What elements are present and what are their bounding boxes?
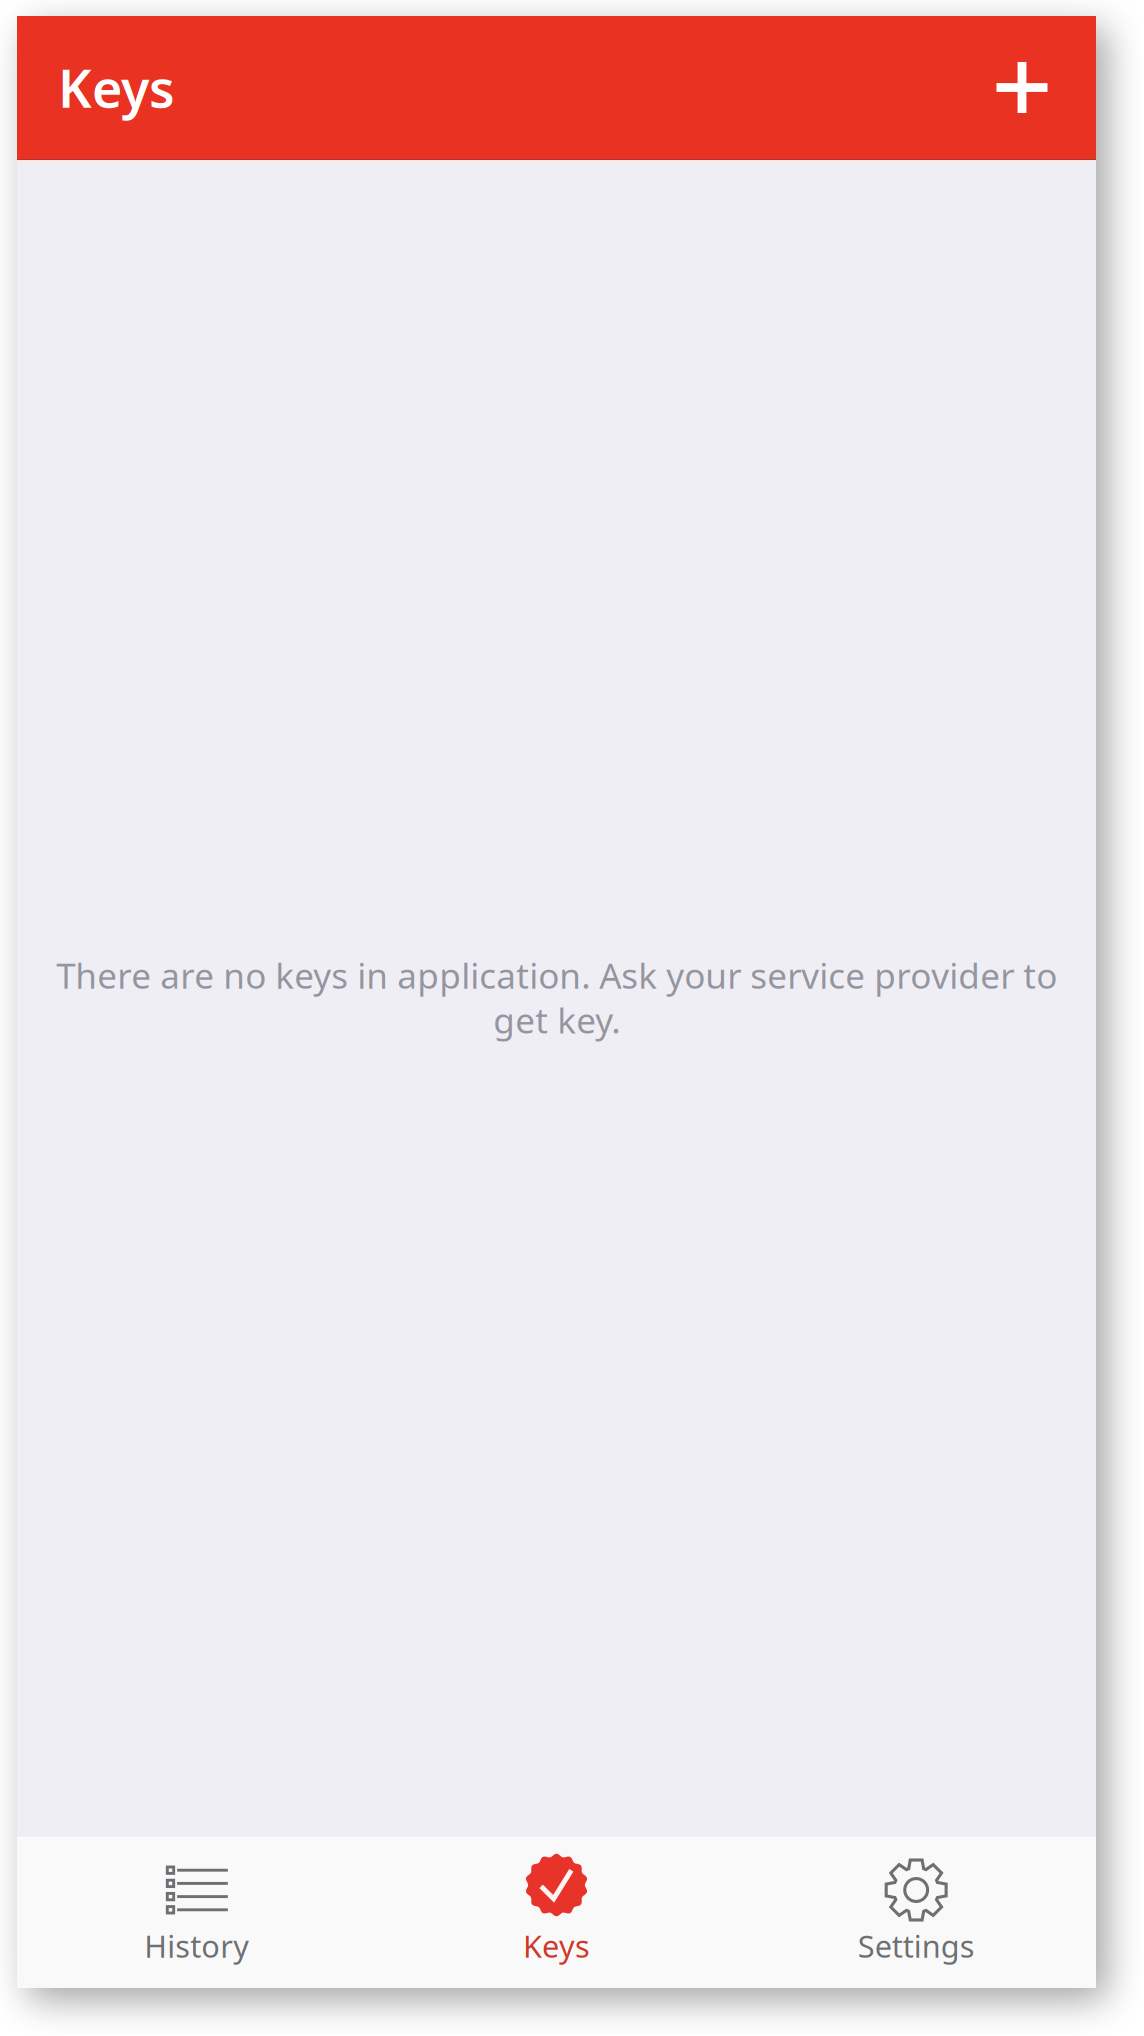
button[interactable]: Settings	[736, 1838, 1096, 1988]
staticText: History	[144, 1925, 249, 1967]
button[interactable]: Add key	[974, 39, 1070, 135]
button[interactable]: History	[17, 1838, 377, 1988]
staticText: There are no keys in application. Ask yo…	[56, 953, 1057, 1042]
staticText: Keys	[523, 1925, 590, 1967]
staticText: Keys	[58, 52, 175, 123]
button[interactable]: Keys	[377, 1838, 736, 1988]
staticText: Settings	[858, 1925, 975, 1967]
